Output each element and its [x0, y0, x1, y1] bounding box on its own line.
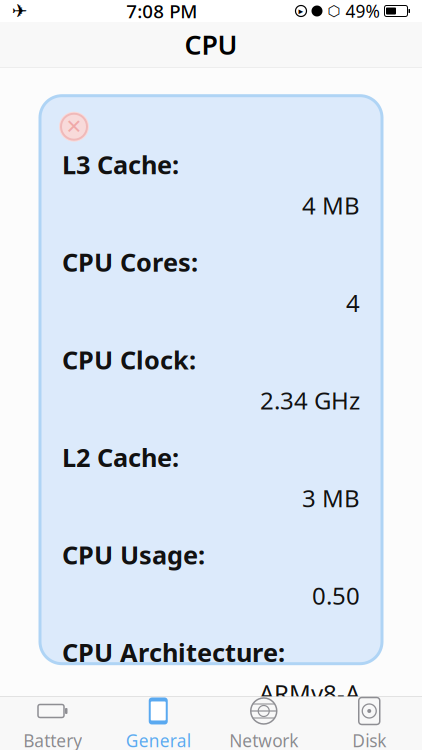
staticText: L1 Cache:: [62, 733, 179, 750]
staticText: CPU: [184, 27, 237, 62]
staticText: CPU Architecture:: [62, 635, 285, 669]
staticText: CPU Clock:: [62, 343, 196, 376]
staticText: CPU Usage:: [62, 538, 205, 571]
button[interactable]: Battery: [0, 691, 105, 750]
staticText: 3 MB: [302, 482, 360, 514]
staticText: General: [126, 729, 191, 750]
staticText: ⬡: [327, 3, 340, 19]
button[interactable]: Disk: [316, 691, 422, 750]
staticText: 4: [346, 287, 360, 319]
button[interactable]: Close: [54, 107, 94, 147]
button[interactable]: General: [105, 691, 211, 750]
staticText: 0.50: [312, 579, 360, 611]
staticText: 7:08 PM: [126, 0, 197, 23]
staticText: Network: [229, 729, 298, 750]
staticText: 49%: [345, 0, 379, 22]
staticText: ✕: [65, 115, 82, 138]
staticText: ARMv8-A: [259, 677, 360, 709]
staticText: ✈: [12, 0, 28, 22]
staticText: CPU Cores:: [62, 245, 198, 279]
staticText: Battery: [23, 729, 82, 750]
staticText: ▸: [298, 6, 303, 16]
staticText: 4 MB: [302, 189, 360, 221]
staticText: Disk: [352, 729, 386, 750]
button[interactable]: Network: [211, 691, 316, 750]
staticText: L3 Cache:: [62, 148, 179, 181]
staticText: L2 Cache:: [62, 440, 179, 474]
staticText: 2.34 GHz: [260, 384, 360, 416]
